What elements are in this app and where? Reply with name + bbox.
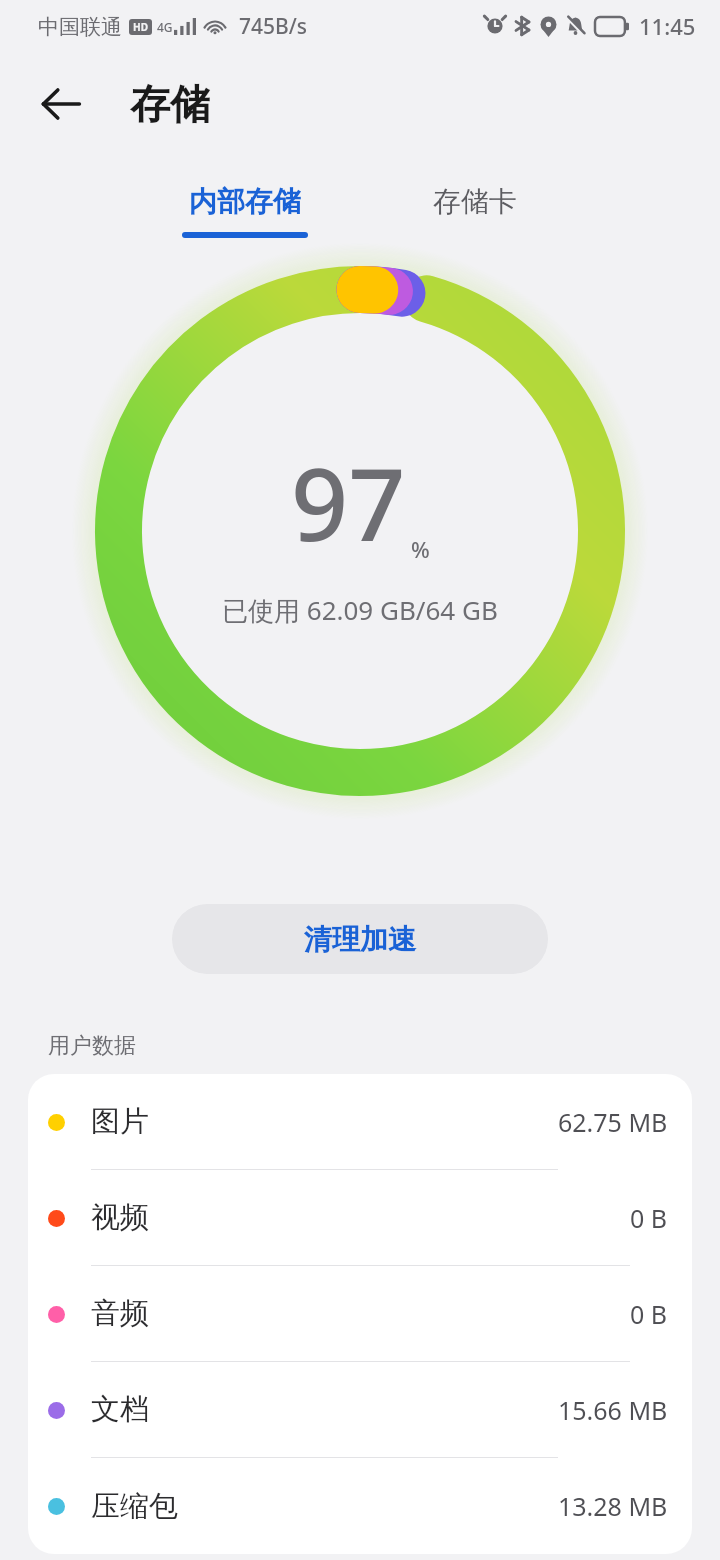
staticText: 压缩包 [91, 1488, 178, 1525]
staticText: HD [133, 20, 148, 34]
button[interactable]: 返回 [30, 73, 92, 135]
staticText: 97 [291, 434, 406, 570]
button[interactable]: 清理加速 [172, 904, 548, 974]
button[interactable]: 视频 [28, 1170, 692, 1266]
staticText: 图片 [91, 1103, 149, 1140]
button[interactable]: 内部存储 [168, 178, 322, 244]
staticText: 存储卡 [433, 184, 517, 219]
staticText: 内部存储 [189, 184, 301, 219]
staticText: 清理加速 [304, 922, 416, 957]
staticText: % [411, 534, 430, 564]
staticText: 745B/s [239, 12, 308, 41]
staticText: 15.66 MB [558, 1393, 668, 1427]
button[interactable]: 存储卡 [398, 178, 552, 244]
button[interactable]: 音频 [28, 1266, 692, 1362]
button[interactable]: 文档 [28, 1362, 692, 1458]
staticText: 用户数据 [48, 1032, 136, 1060]
staticText: 视频 [91, 1199, 149, 1236]
staticText: 文档 [91, 1391, 149, 1428]
staticText: 存储 [130, 79, 210, 129]
staticText: 4G [157, 19, 173, 35]
button[interactable]: 图片 [28, 1074, 692, 1170]
staticText: 0 B [630, 1297, 668, 1331]
button[interactable]: 压缩包 [28, 1458, 692, 1554]
staticText: 13.28 MB [558, 1489, 668, 1523]
staticText: 0 B [630, 1201, 668, 1235]
staticText: 62.75 MB [558, 1105, 668, 1139]
staticText: 音频 [91, 1295, 149, 1332]
staticText: 11:45 [639, 11, 696, 41]
staticText: 已使用 62.09 GB/64 GB [222, 592, 498, 628]
staticText: 中国联通 [38, 14, 122, 40]
